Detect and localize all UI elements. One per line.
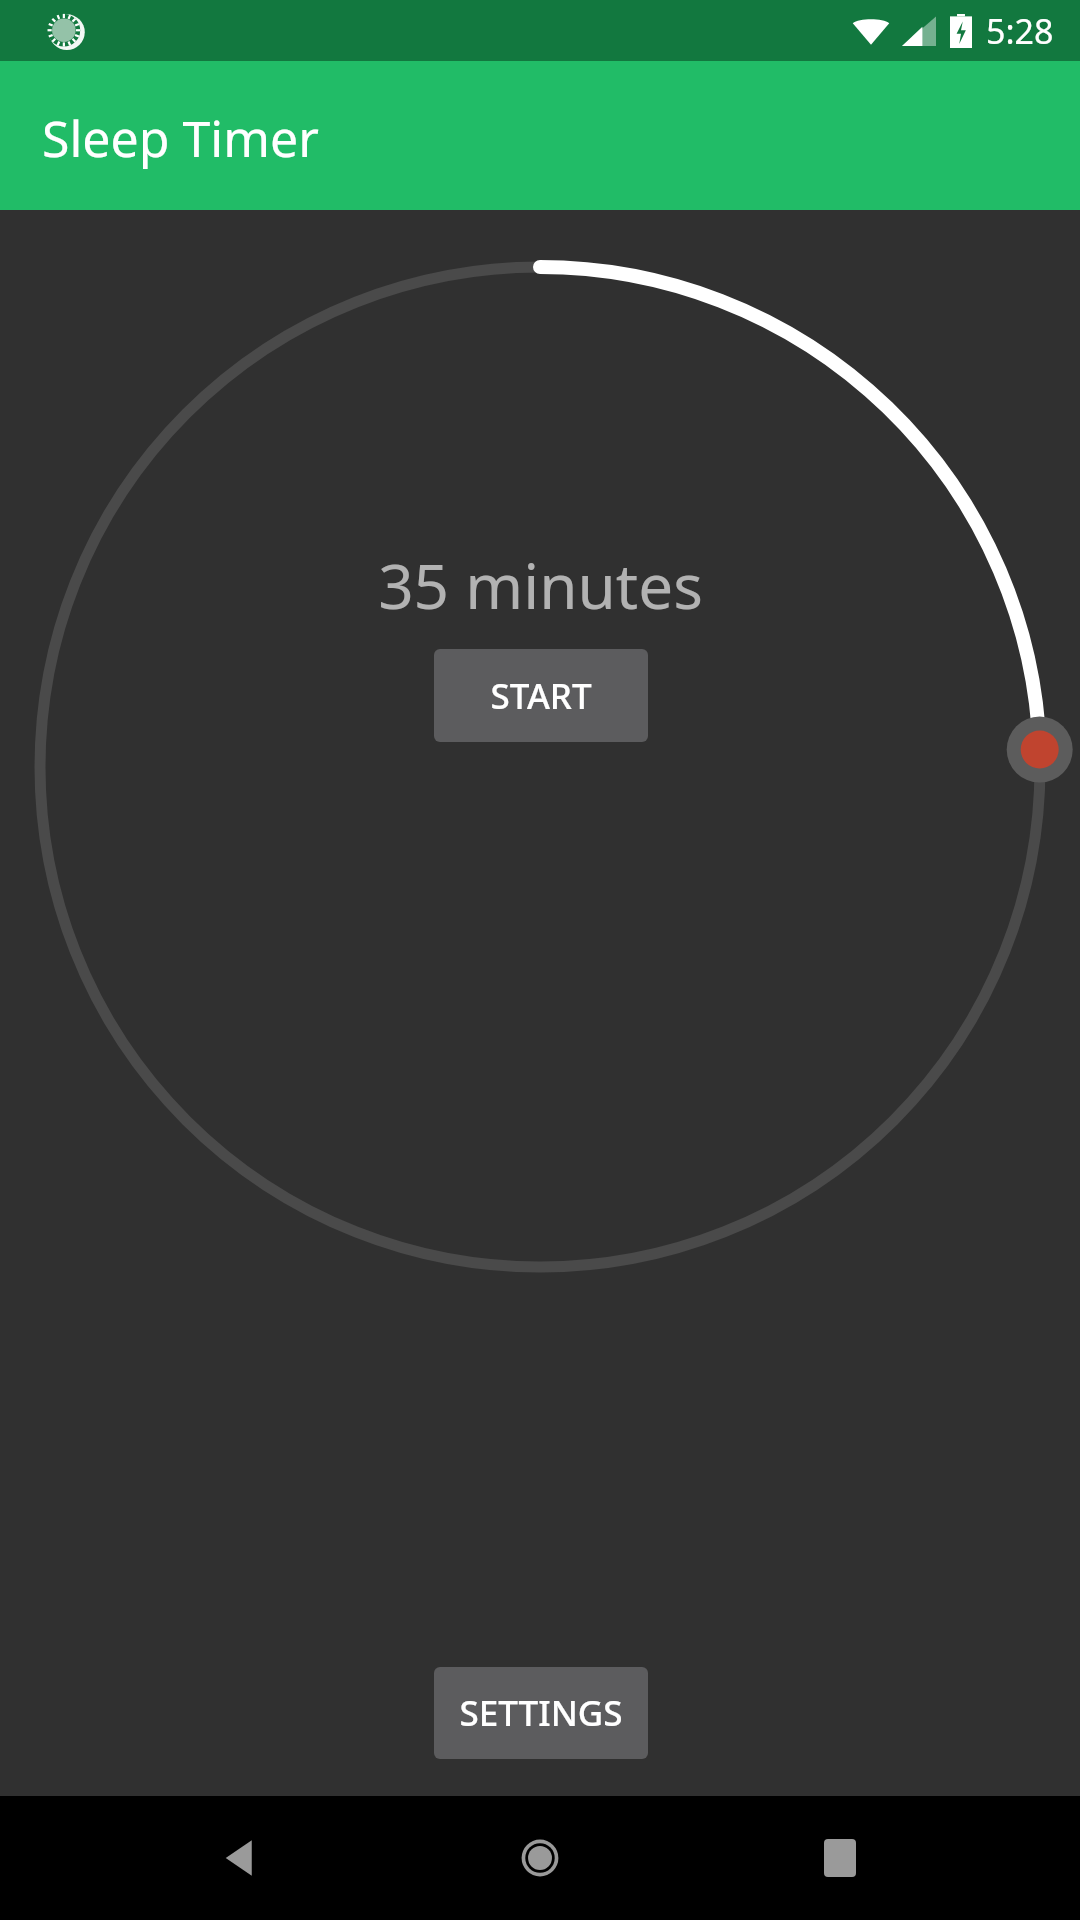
staticText: SETTINGS <box>459 1689 623 1737</box>
button[interactable]: Back <box>180 1798 300 1918</box>
staticText: 35 minutes <box>378 543 703 627</box>
staticText: 5:28 <box>986 8 1054 54</box>
button[interactable]: SETTINGS <box>434 1667 648 1759</box>
button[interactable]: Home <box>480 1798 600 1918</box>
staticText: START <box>490 672 592 720</box>
staticText: Sleep Timer <box>42 104 319 172</box>
button[interactable]: Recent apps <box>780 1798 900 1918</box>
button[interactable]: START <box>434 649 648 742</box>
